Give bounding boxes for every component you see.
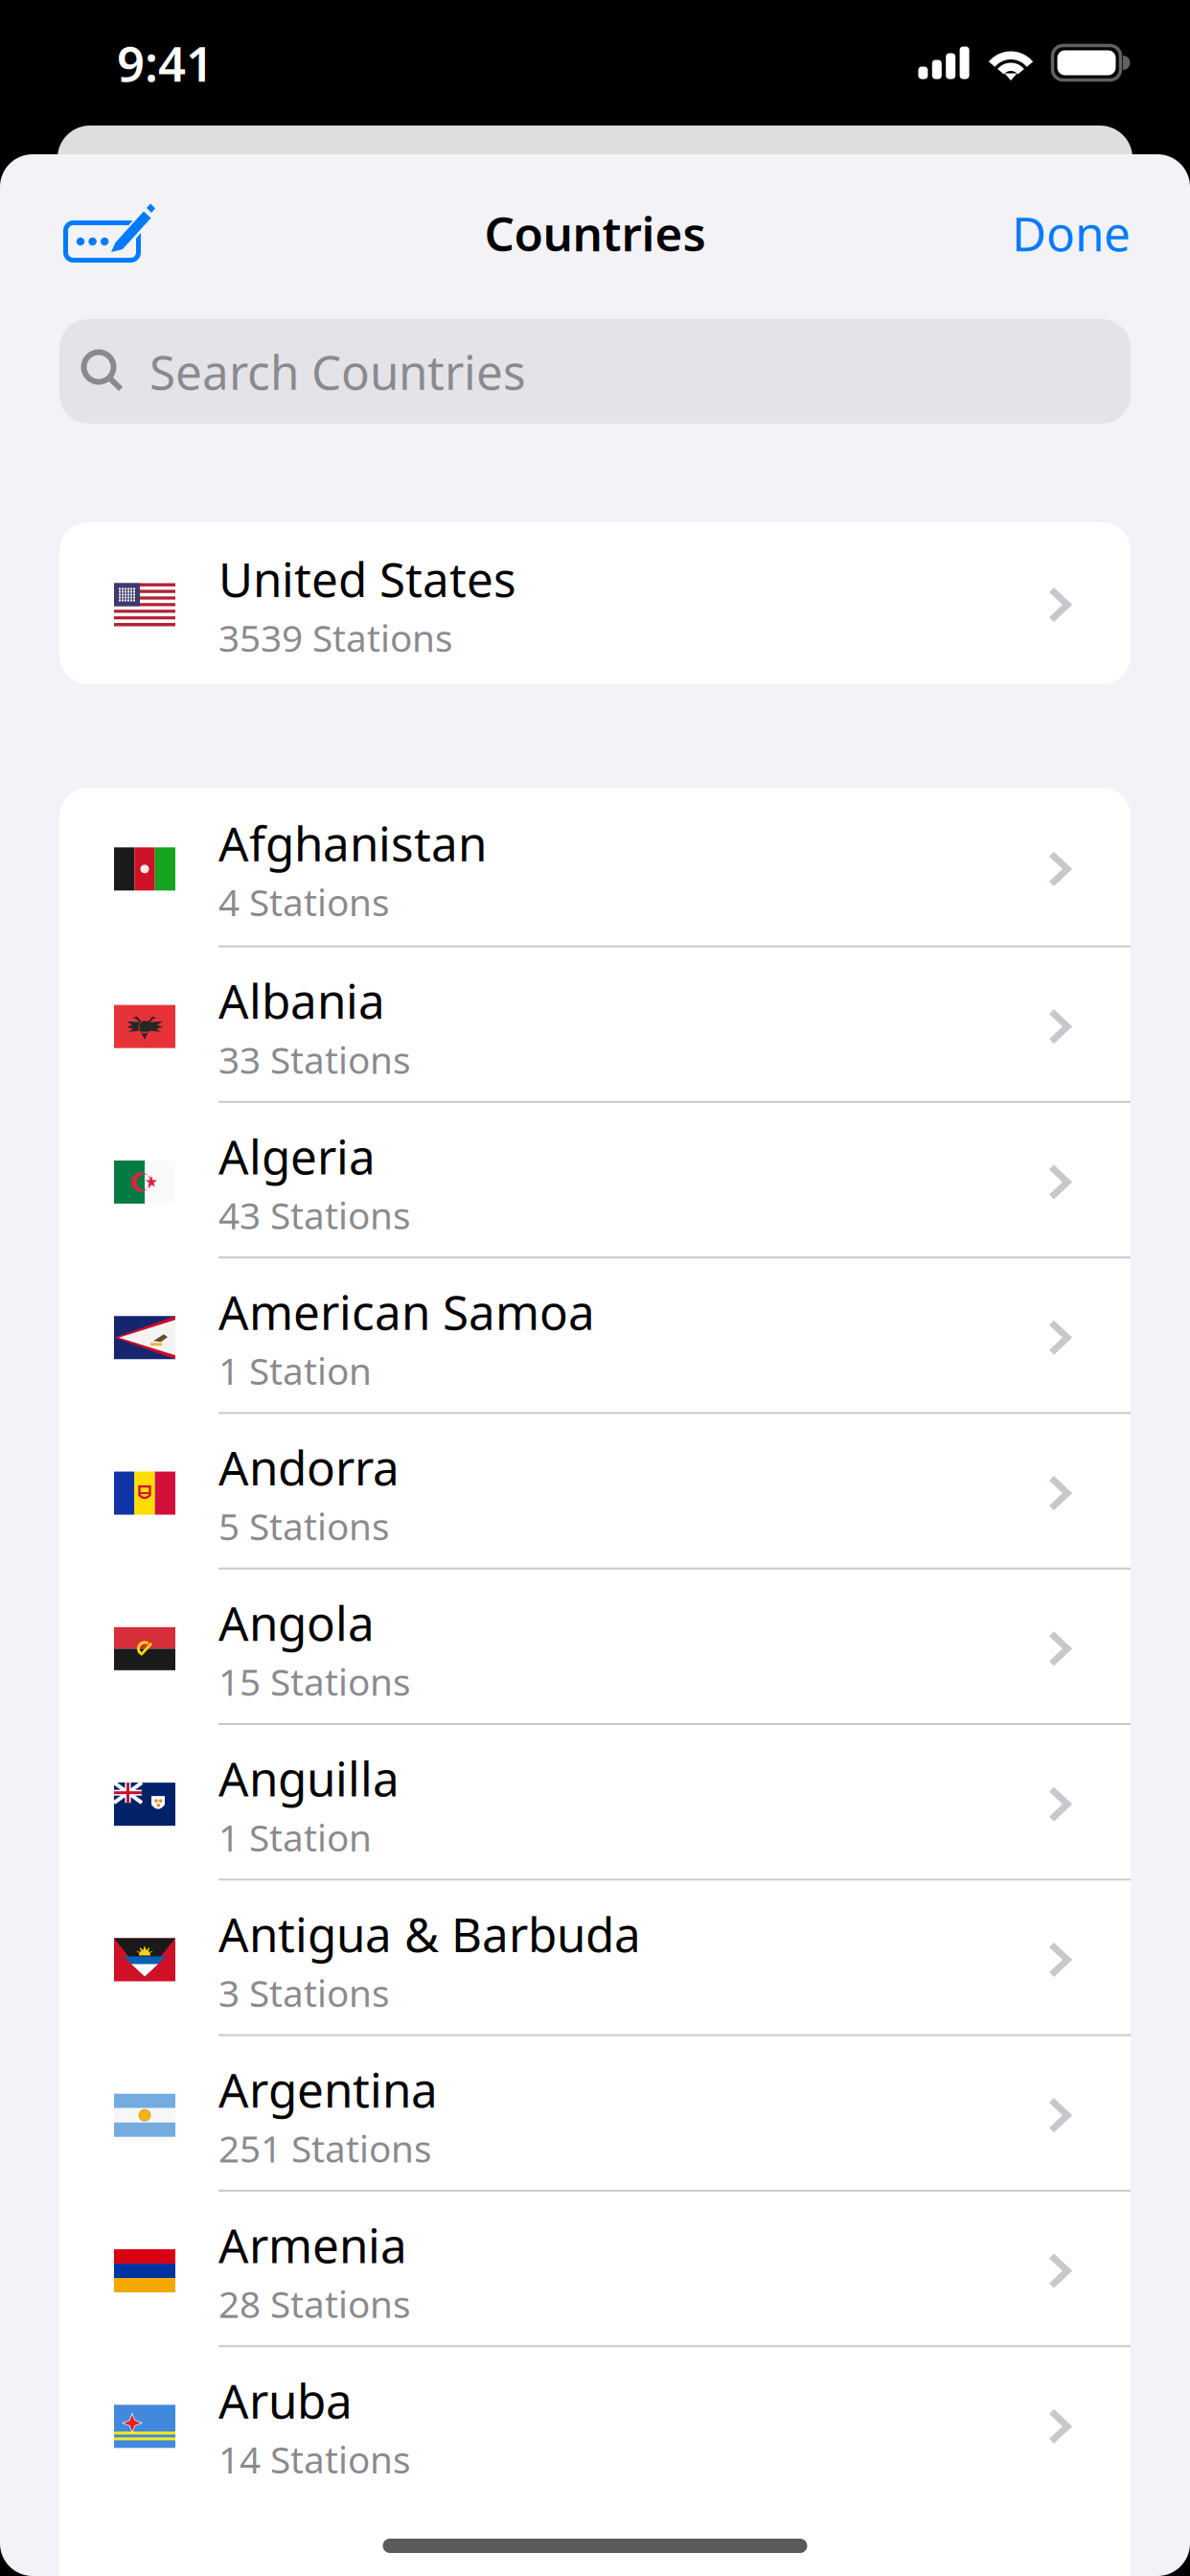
staticText: 15 Stations — [218, 1657, 411, 1706]
staticText: Algeria — [218, 1125, 376, 1187]
button[interactable]: Albania — [59, 947, 1131, 1103]
staticText: Albania — [218, 969, 385, 1032]
staticText: Aruba — [218, 2369, 353, 2432]
button[interactable]: Compose — [0, 184, 174, 289]
button[interactable]: Done — [993, 184, 1190, 289]
staticText: Afghanistan — [218, 812, 487, 874]
staticText: Done — [1012, 201, 1131, 264]
staticText: Armenia — [218, 2213, 407, 2276]
button[interactable]: Search Countries — [59, 319, 1131, 424]
staticText: 5 Stations — [218, 1501, 390, 1550]
staticText: Anguilla — [218, 1747, 400, 1810]
staticText: Andorra — [218, 1436, 400, 1498]
button[interactable]: Algeria — [59, 1103, 1131, 1258]
button[interactable]: Aruba — [59, 2347, 1131, 2503]
button[interactable]: Afghanistan — [59, 788, 1131, 947]
staticText: Countries — [484, 201, 706, 264]
staticText: Angola — [218, 1591, 375, 1654]
staticText: Antigua & Barbuda — [218, 1902, 641, 1965]
staticText: Argentina — [218, 2058, 438, 2121]
staticText: United States — [218, 547, 516, 610]
staticText: 33 Stations — [218, 1035, 411, 1084]
staticText: 1 Station — [218, 1812, 372, 1862]
button[interactable]: Andorra — [59, 1414, 1131, 1569]
staticText: 43 Stations — [218, 1190, 411, 1239]
staticText: 4 Stations — [218, 877, 390, 926]
button[interactable]: Antigua & Barbuda — [59, 1881, 1131, 2036]
button[interactable]: Armenia — [59, 2192, 1131, 2347]
button[interactable]: United States — [59, 522, 1131, 684]
staticText: 14 Stations — [218, 2435, 411, 2484]
staticText: 3 Stations — [218, 1968, 390, 2017]
button[interactable]: Anguilla — [59, 1725, 1131, 1881]
button[interactable]: Angola — [59, 1569, 1131, 1725]
button[interactable]: American Samoa — [59, 1258, 1131, 1414]
staticText: American Samoa — [218, 1280, 595, 1343]
staticText: 9:41 — [117, 31, 214, 95]
button[interactable]: Argentina — [59, 2036, 1131, 2192]
staticText: 3539 Stations — [218, 613, 453, 662]
staticText: 1 Station — [218, 1346, 372, 1395]
staticText: 251 Stations — [218, 2123, 432, 2173]
staticText: Search Countries — [149, 340, 526, 403]
staticText: 28 Stations — [218, 2279, 411, 2328]
